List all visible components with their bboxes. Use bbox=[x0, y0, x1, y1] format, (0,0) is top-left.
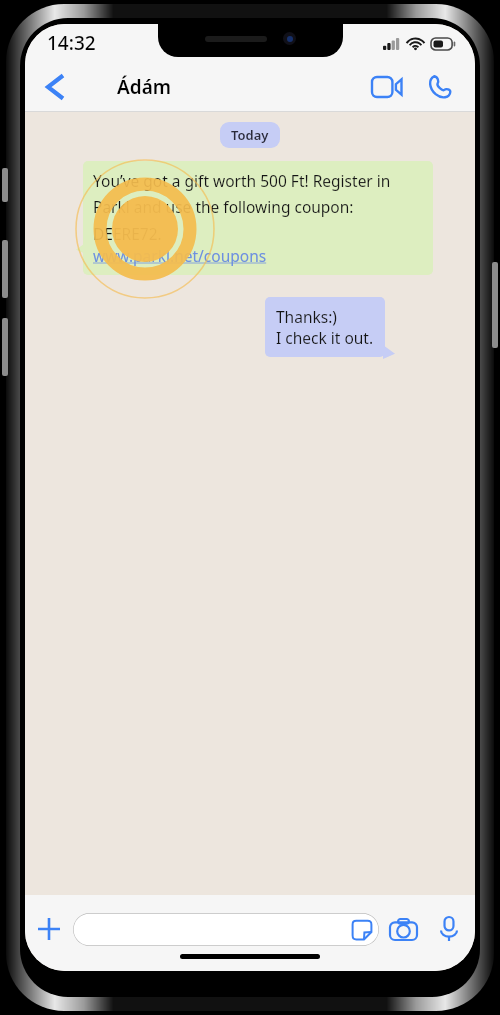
button[interactable]: Record voice message bbox=[427, 905, 471, 953]
button[interactable]: Back bbox=[31, 64, 77, 110]
staticText: Today bbox=[231, 126, 269, 144]
button[interactable]: You’ve got a gift worth 500 Ft! Register… bbox=[83, 161, 433, 275]
button[interactable]: Add attachment bbox=[25, 905, 73, 953]
staticText: 14:32 bbox=[47, 30, 96, 56]
button[interactable]: Thanks:) bbox=[265, 297, 385, 357]
button[interactable]: Camera bbox=[379, 905, 427, 953]
staticText: I check it out. bbox=[276, 327, 374, 348]
button[interactable]: Stickers bbox=[348, 916, 376, 944]
staticText: Thanks:) bbox=[276, 306, 337, 327]
staticText: You’ve got a gift worth 500 Ft! Register… bbox=[93, 170, 423, 245]
button[interactable]: Video call bbox=[365, 65, 409, 109]
button[interactable]: www.parkl.net/coupons bbox=[93, 245, 267, 266]
staticText: Ádám bbox=[117, 74, 172, 100]
button[interactable]: Audio call bbox=[417, 65, 461, 109]
button[interactable]: Stickers bbox=[73, 913, 379, 946]
